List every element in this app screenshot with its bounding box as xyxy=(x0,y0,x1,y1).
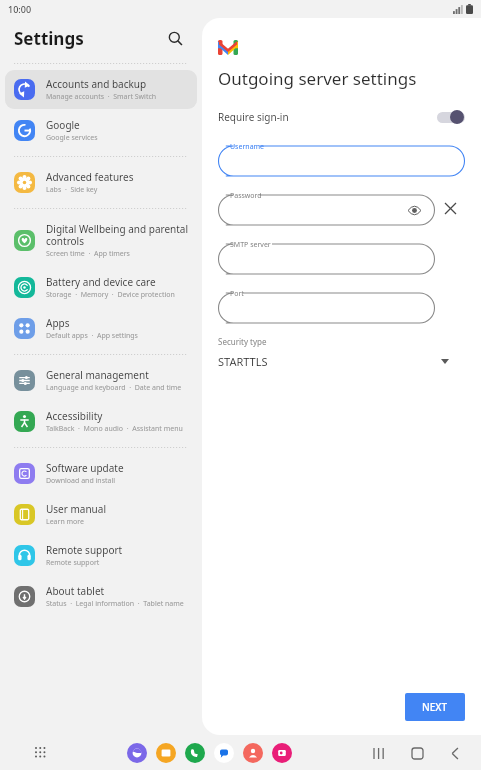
staticText: Password xyxy=(230,191,262,201)
button[interactable]: Bixby xyxy=(127,743,147,763)
staticText: Screen time · App timers xyxy=(46,249,130,259)
staticText: Require sign-in xyxy=(218,110,289,124)
button[interactable]: Advanced features xyxy=(5,163,197,202)
button[interactable]: Software update xyxy=(5,454,197,493)
staticText: Google services xyxy=(46,133,98,143)
button[interactable]: Recent apps xyxy=(365,739,393,767)
staticText: Settings xyxy=(14,27,84,50)
staticText: Apps xyxy=(46,316,70,330)
button[interactable]: Show password xyxy=(405,201,423,219)
staticText: Port xyxy=(230,289,244,299)
staticText: Outgoing server settings xyxy=(218,67,417,90)
staticText: NEXT xyxy=(422,700,448,714)
button[interactable]: General management xyxy=(5,361,197,400)
staticText: Remote support xyxy=(46,558,100,568)
staticText: Download and install xyxy=(46,476,116,486)
button[interactable]: Contacts xyxy=(243,743,263,763)
button[interactable]: Home xyxy=(403,739,431,767)
button[interactable]: Remote support xyxy=(5,536,197,575)
staticText: Accounts and backup xyxy=(46,77,147,91)
button[interactable]: Phone xyxy=(185,743,205,763)
staticText: Google xyxy=(46,118,80,132)
button[interactable]: NEXT xyxy=(405,693,465,721)
button[interactable]: My Files xyxy=(156,743,176,763)
button[interactable]: STARTTLS xyxy=(218,354,449,369)
staticText: SMTP server xyxy=(230,240,271,250)
staticText: Username xyxy=(230,142,265,152)
staticText: Digital Wellbeing and parental controls xyxy=(46,222,189,248)
staticText: General management xyxy=(46,368,149,382)
staticText: Accessibility xyxy=(46,409,103,423)
staticText: Manage accounts · Smart Switch xyxy=(46,92,157,102)
staticText: Learn more xyxy=(46,517,85,527)
button[interactable]: Google xyxy=(5,111,197,150)
button[interactable]: User manual xyxy=(5,495,197,534)
staticText: Battery and device care xyxy=(46,275,156,289)
button[interactable]: Clear password xyxy=(435,193,465,223)
staticText: Storage · Memory · Device protection xyxy=(46,290,175,300)
staticText: Software update xyxy=(46,461,124,475)
staticText: Language and keyboard · Date and time xyxy=(46,383,182,393)
button[interactable]: Back xyxy=(441,739,469,767)
staticText: Advanced features xyxy=(46,170,134,184)
staticText: 10:00 xyxy=(8,3,32,15)
button[interactable]: Messages xyxy=(214,743,234,763)
button[interactable]: Digital Wellbeing and parental controls xyxy=(5,215,197,266)
staticText: User manual xyxy=(46,502,106,516)
button[interactable]: Accounts and backup xyxy=(5,70,197,109)
staticText: STARTTLS xyxy=(218,354,268,369)
staticText: Default apps · App settings xyxy=(46,331,138,341)
staticText: About tablet xyxy=(46,584,105,598)
staticText: Security type xyxy=(218,336,267,347)
button[interactable]: Require sign-in xyxy=(218,104,465,130)
staticText: Labs · Side key xyxy=(46,185,98,195)
button[interactable]: About tablet xyxy=(5,577,197,616)
button[interactable]: Gallery xyxy=(272,743,292,763)
button[interactable]: Search settings xyxy=(162,25,188,51)
button[interactable]: Accessibility xyxy=(5,402,197,441)
staticText: TalkBack · Mono audio · Assistant menu xyxy=(46,424,183,434)
button[interactable]: Apps xyxy=(5,309,197,348)
button[interactable]: Battery and device care xyxy=(5,268,197,307)
button[interactable]: Apps xyxy=(28,740,54,766)
staticText: Status · Legal information · Tablet name xyxy=(46,599,184,609)
staticText: Remote support xyxy=(46,543,123,557)
